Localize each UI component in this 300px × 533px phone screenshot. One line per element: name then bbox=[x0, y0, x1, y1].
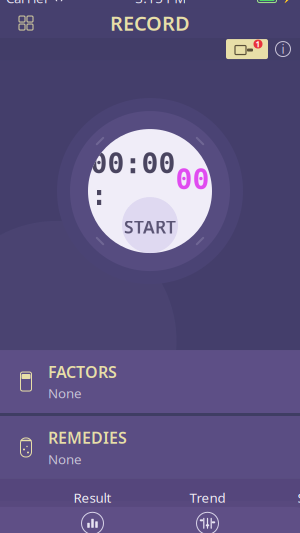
staticText: Settings bbox=[297, 489, 300, 506]
staticText: i bbox=[281, 41, 284, 57]
staticText: RECORD bbox=[110, 10, 190, 36]
button[interactable]: Information bbox=[270, 38, 296, 60]
staticText: FACTORS bbox=[48, 361, 117, 382]
button[interactable]: Notifications bbox=[224, 38, 270, 60]
staticText: Result bbox=[73, 489, 111, 506]
staticText: REMEDIES bbox=[48, 427, 127, 448]
button[interactable]: Start timer bbox=[88, 129, 212, 253]
staticText: None bbox=[48, 384, 82, 402]
staticText: 00 bbox=[175, 164, 209, 195]
button[interactable]: Record bbox=[0, 483, 35, 533]
staticText: ⚡ bbox=[282, 0, 294, 3]
button[interactable]: FACTORS bbox=[0, 350, 300, 413]
button[interactable]: Settings bbox=[265, 483, 300, 533]
staticText: START bbox=[124, 215, 176, 238]
staticText: Trend bbox=[189, 489, 225, 506]
button[interactable]: Trend bbox=[150, 483, 265, 533]
staticText: 00:00: bbox=[90, 148, 175, 211]
staticText: Carrier bbox=[6, 0, 50, 7]
staticText: 3:15 PM bbox=[135, 0, 186, 7]
button[interactable]: Menu bbox=[4, 7, 48, 39]
button[interactable]: REMEDIES bbox=[0, 416, 300, 479]
staticText: 1 bbox=[255, 39, 260, 49]
staticText: None bbox=[48, 450, 82, 468]
button[interactable]: Result bbox=[35, 483, 150, 533]
